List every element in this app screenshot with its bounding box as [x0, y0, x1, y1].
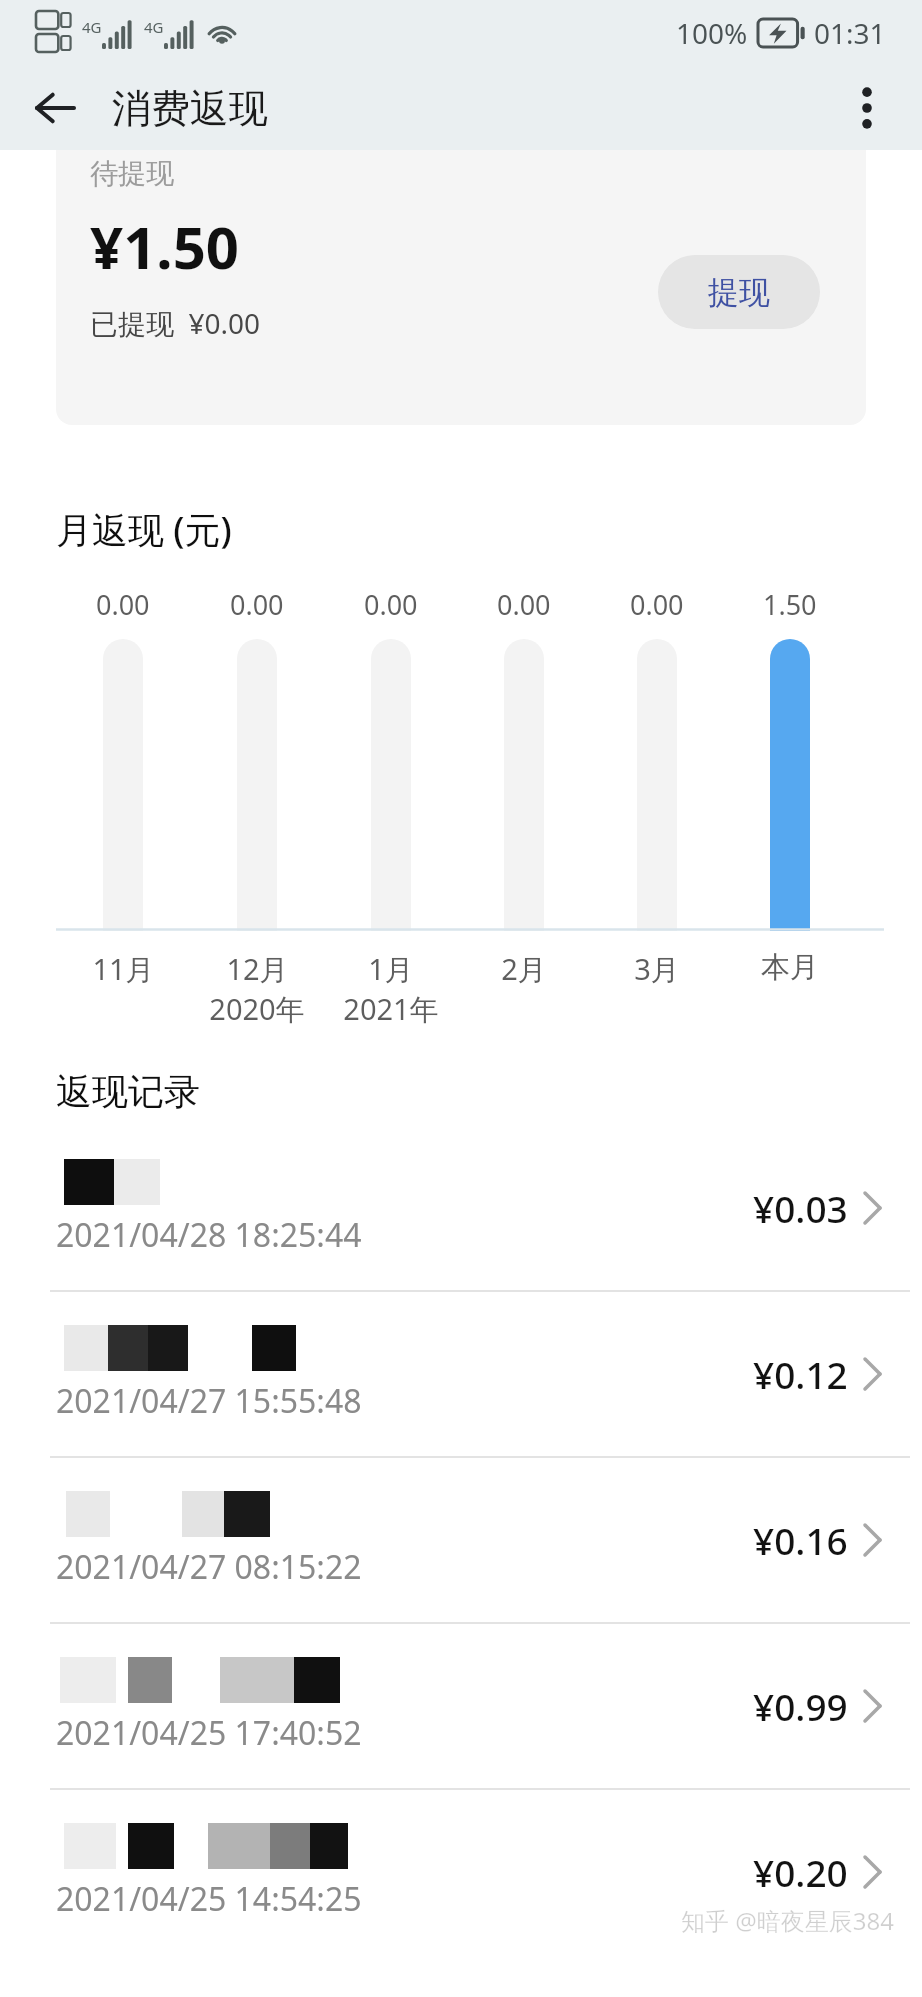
- staticText: ¥0.16: [753, 1515, 848, 1565]
- button[interactable]: 2021/04/28 18:25:44: [0, 1126, 922, 1290]
- staticText: ¥0.99: [753, 1681, 848, 1731]
- staticText: 12月: [226, 949, 289, 989]
- staticText: 月返现 (元): [56, 505, 232, 554]
- staticText: 2021/04/27 08:15:22: [56, 1545, 362, 1589]
- button[interactable]: 2021/04/25 17:40:52: [0, 1624, 922, 1788]
- staticText: 2021/04/25 17:40:52: [56, 1711, 362, 1755]
- staticText: 0.00: [96, 586, 150, 623]
- button[interactable]: Back: [20, 73, 90, 143]
- button[interactable]: More options: [834, 75, 900, 141]
- staticText: 0.00: [497, 586, 551, 623]
- staticText: 4G: [144, 17, 164, 37]
- staticText: 已提现 ¥0.00: [90, 304, 261, 342]
- staticText: 知乎 @暗夜星辰384: [681, 1904, 894, 1937]
- staticText: 返现记录: [56, 1069, 200, 1114]
- button[interactable]: 提现: [658, 255, 820, 329]
- staticText: 0.00: [364, 586, 418, 623]
- staticText: 消费返现: [112, 84, 268, 133]
- staticText: 2021/04/25 14:54:25: [56, 1877, 362, 1921]
- staticText: 100%: [676, 14, 748, 52]
- staticText: 2020年: [209, 989, 305, 1029]
- staticText: 1.50: [763, 586, 817, 623]
- button[interactable]: 2021/04/27 08:15:22: [0, 1458, 922, 1622]
- staticText: 0.00: [230, 586, 284, 623]
- staticText: 0.00: [630, 586, 684, 623]
- staticText: 11月: [92, 949, 155, 989]
- staticText: 待提现: [90, 156, 174, 191]
- staticText: 2月: [501, 949, 547, 989]
- staticText: ¥0.20: [753, 1847, 848, 1897]
- staticText: 本月: [761, 949, 819, 986]
- staticText: ¥0.03: [753, 1183, 848, 1233]
- staticText: ¥1.50: [90, 207, 240, 286]
- button[interactable]: 2021/04/27 15:55:48: [0, 1292, 922, 1456]
- staticText: 提现: [708, 273, 770, 312]
- staticText: 3月: [634, 949, 680, 989]
- staticText: 4G: [82, 17, 102, 37]
- staticText: 2021/04/28 18:25:44: [56, 1213, 362, 1257]
- staticText: 2021年: [343, 989, 439, 1029]
- button[interactable]: 2021/04/25 14:54:25: [0, 1790, 922, 1954]
- staticText: ¥0.12: [753, 1349, 848, 1399]
- staticText: 01:31: [814, 14, 886, 52]
- staticText: 2021/04/27 15:55:48: [56, 1379, 362, 1423]
- staticText: 1月: [368, 949, 414, 989]
